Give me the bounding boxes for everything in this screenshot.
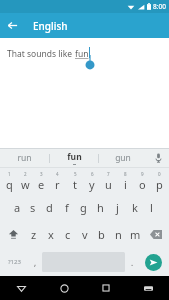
staticText: p [156,177,163,192]
button[interactable]: j [109,194,126,221]
staticText: 8:00 [153,2,166,11]
staticText: j [116,200,119,215]
button[interactable]: z [25,221,42,248]
staticText: r [55,177,60,192]
staticText: w [21,177,30,192]
staticText: 4 [56,171,59,177]
button[interactable]: 4 [49,168,66,194]
staticText: d [46,200,53,215]
button[interactable]: Switch keyboard [127,276,169,300]
staticText: t [73,177,77,192]
button[interactable]: Backspace [144,221,168,248]
staticText: , [34,257,37,268]
button[interactable]: Back [0,276,43,300]
staticText: h [97,200,104,215]
button[interactable]: gun [99,149,147,167]
staticText: n [115,227,122,242]
staticText: s [30,200,36,215]
button[interactable]: 8 [117,168,134,194]
staticText: 0 [158,171,161,177]
staticText: English [33,19,68,33]
staticText: q [6,177,13,192]
button[interactable]: run [0,149,49,167]
button[interactable]: g [75,194,92,221]
staticText: k [132,200,138,215]
button[interactable]: l [143,194,160,221]
button[interactable]: 1 [1,168,17,194]
staticText: 9 [141,171,144,177]
staticText: g [80,200,87,215]
button[interactable]: s [25,194,41,221]
button[interactable]: Shift [1,221,25,248]
button[interactable]: Recent apps [85,276,127,300]
button[interactable]: Home [43,276,85,300]
staticText: z [31,227,37,242]
staticText: 8 [124,171,127,177]
staticText: 7 [107,171,110,177]
button[interactable]: 3 [33,168,49,194]
staticText: fun [75,48,89,60]
button[interactable]: m [127,221,144,248]
staticText: l [150,200,153,215]
button[interactable]: , [28,248,42,276]
button[interactable]: x [42,221,59,248]
staticText: e [38,177,45,192]
button[interactable]: 9 [134,168,151,194]
button[interactable]: d [41,194,58,221]
button[interactable]: Voice input [147,149,169,167]
button[interactable]: c [59,221,76,248]
staticText: o [139,177,146,192]
staticText: y [89,177,95,192]
staticText: run [17,152,32,164]
button[interactable]: 7 [100,168,117,194]
staticText: m [130,227,141,242]
staticText: u [105,177,112,192]
button[interactable]: v [76,221,93,248]
button[interactable]: b [93,221,110,248]
staticText: b [98,227,105,242]
staticText: That sounds like [7,48,75,60]
button[interactable]: 5 [66,168,83,194]
button[interactable]: ?123 [1,248,28,276]
staticText: a [14,200,21,215]
staticText: f [65,200,69,215]
button[interactable]: 0 [151,168,168,194]
staticText: . [131,257,134,268]
staticText: gun [115,152,131,164]
staticText: ?123 [8,258,21,266]
button[interactable]: n [110,221,127,248]
button[interactable]: 6 [83,168,100,194]
staticText: 1 [8,171,11,177]
button[interactable]: Back [0,13,25,38]
staticText: 3 [40,171,43,177]
staticText: x [48,227,54,242]
staticText: c [65,227,71,242]
button[interactable]: h [92,194,109,221]
button[interactable]: f [58,194,75,221]
button[interactable]: fun [50,149,98,167]
staticText: 5 [74,171,77,177]
button[interactable]: 2 [17,168,33,194]
staticText: i [124,177,127,192]
button[interactable]: k [126,194,143,221]
staticText: fun [67,151,82,163]
button[interactable]: a [9,194,25,221]
button[interactable]: Send [139,248,168,276]
staticText: v [82,227,88,242]
button[interactable]: . [125,248,139,276]
staticText: 2 [24,171,27,177]
staticText: 6 [91,171,94,177]
